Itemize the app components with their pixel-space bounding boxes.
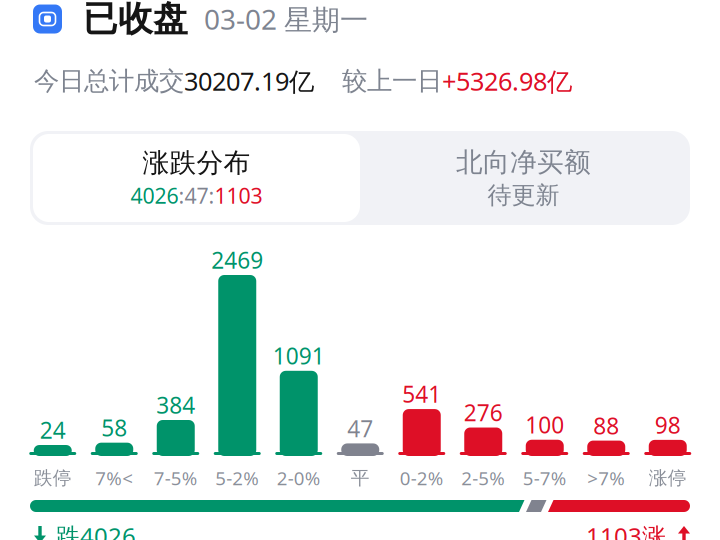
staticText: 平 <box>351 466 370 489</box>
staticText: 1103 <box>214 181 262 209</box>
staticText: 1091 <box>273 341 325 371</box>
staticText: 跌停 <box>34 466 72 489</box>
staticText: 30207.19亿 <box>184 64 314 98</box>
staticText: 5-2% <box>215 466 259 490</box>
staticText: 7%< <box>95 466 133 490</box>
staticText: 北向净买额 <box>456 146 591 179</box>
staticText: +5326.98亿 <box>442 64 572 98</box>
staticText: 0-2% <box>400 466 444 490</box>
staticText: 已收盘 <box>83 0 188 40</box>
staticText: 58 <box>101 413 127 443</box>
staticText: 跌4026 <box>56 520 136 540</box>
staticText: 03-02 星期一 <box>204 0 368 38</box>
staticText: >7% <box>587 466 625 490</box>
staticText: 88 <box>593 410 619 441</box>
button[interactable]: 北向净买额 <box>360 134 687 222</box>
staticText: 涨停 <box>649 466 687 489</box>
staticText: 2-0% <box>277 466 321 490</box>
staticText: 384 <box>156 390 195 420</box>
staticText: 涨跌分布 <box>142 146 250 179</box>
staticText: 24 <box>40 415 66 445</box>
staticText: :47: <box>178 181 214 209</box>
staticText: 100 <box>525 410 564 440</box>
button[interactable]: 涨跌分布 <box>33 134 360 222</box>
staticText: 待更新 <box>487 181 559 210</box>
staticText: 47 <box>347 413 373 443</box>
staticText: 4026 <box>130 181 178 209</box>
staticText: 5-7% <box>523 466 567 490</box>
staticText: 1103涨 <box>586 520 666 540</box>
staticText: 2-5% <box>461 466 505 490</box>
staticText: 今日总计成交 <box>34 65 184 96</box>
staticText: 7-5% <box>154 466 198 490</box>
staticText: 276 <box>464 397 503 428</box>
staticText: 较上一日 <box>342 65 442 96</box>
staticText: 541 <box>402 379 441 409</box>
staticText: 98 <box>655 410 681 440</box>
staticText: 2469 <box>211 245 263 275</box>
